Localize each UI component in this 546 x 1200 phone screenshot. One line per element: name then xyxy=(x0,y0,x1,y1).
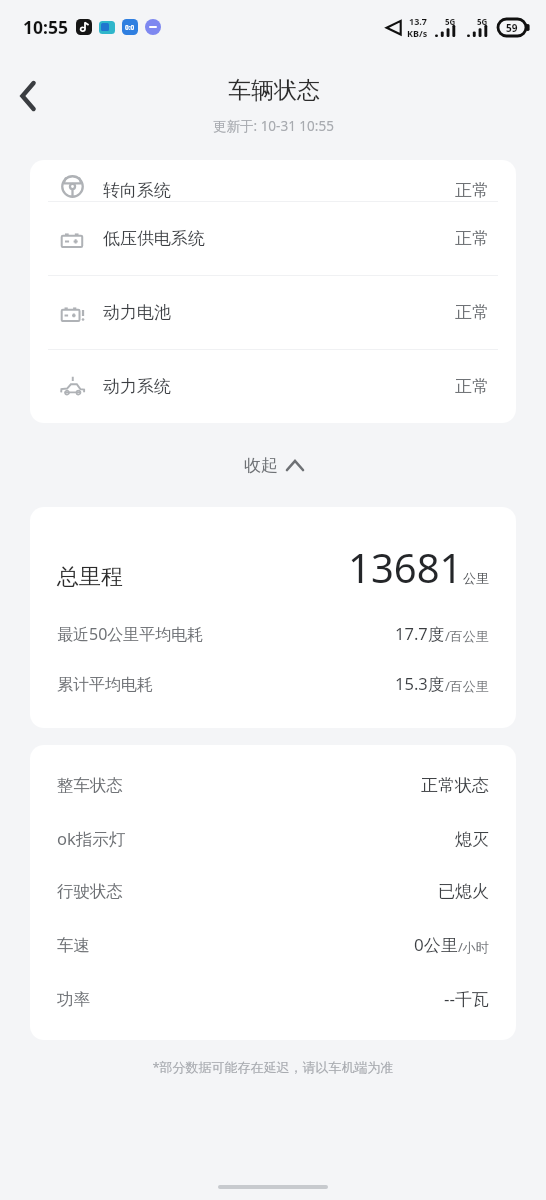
staticText: 行驶状态 xyxy=(57,881,123,902)
button[interactable]: 最近50公里平均电耗 xyxy=(57,622,489,645)
staticText: 13.7 xyxy=(409,15,427,27)
button[interactable]: 动力系统 xyxy=(30,350,516,423)
button[interactable]: 累计平均电耗 xyxy=(57,672,489,695)
button[interactable]: 收起 xyxy=(0,423,546,507)
staticText: 更新于: 10-31 10:55 xyxy=(213,117,334,135)
staticText: 0:0 xyxy=(125,23,135,32)
button[interactable]: 低压供电系统 xyxy=(30,202,516,275)
staticText: 累计平均电耗 xyxy=(57,675,153,695)
button[interactable]: 整车状态 xyxy=(57,775,489,796)
button[interactable]: ok指示灯 xyxy=(57,827,489,850)
staticText: 正常 xyxy=(455,180,489,201)
button[interactable]: 动力电池 xyxy=(30,276,516,349)
staticText: 公里 xyxy=(463,570,489,586)
staticText: 整车状态 xyxy=(57,775,123,796)
staticText: 59 xyxy=(506,21,518,35)
staticText: /小时 xyxy=(458,938,489,956)
staticText: 功率 xyxy=(57,989,90,1010)
button[interactable]: 车速 xyxy=(57,933,489,956)
staticText: ok指示灯 xyxy=(57,827,126,850)
staticText: 15.3度 xyxy=(395,672,445,695)
button[interactable]: 功率 xyxy=(57,987,489,1010)
staticText: 动力电池 xyxy=(103,302,171,323)
staticText: 0公里 xyxy=(414,933,458,956)
staticText: 5G xyxy=(445,16,456,27)
staticText: 最近50公里平均电耗 xyxy=(57,623,204,645)
staticText: 5G xyxy=(477,16,488,27)
staticText: 车辆状态 xyxy=(228,76,320,105)
staticText: --千瓦 xyxy=(444,987,489,1010)
staticText: 10:55 xyxy=(23,15,68,39)
staticText: 动力系统 xyxy=(103,376,171,397)
button[interactable]: Back xyxy=(0,68,56,124)
staticText: 转向系统 xyxy=(103,180,171,201)
staticText: 熄灭 xyxy=(455,829,489,850)
staticText: 低压供电系统 xyxy=(103,228,205,249)
staticText: *部分数据可能存在延迟，请以车机端为准 xyxy=(0,1058,546,1076)
staticText: KB/s xyxy=(407,27,428,39)
staticText: /百公里 xyxy=(445,677,489,695)
staticText: 正常 xyxy=(455,302,489,323)
staticText: 13681 xyxy=(348,540,463,594)
staticText: 总里程 xyxy=(57,563,123,591)
staticText: 正常状态 xyxy=(421,775,489,796)
staticText: 收起 xyxy=(244,455,278,476)
button[interactable]: 转向系统 xyxy=(30,160,516,201)
staticText: 正常 xyxy=(455,376,489,397)
staticText: /百公里 xyxy=(445,627,489,645)
button[interactable]: 行驶状态 xyxy=(57,881,489,902)
staticText: 车速 xyxy=(57,935,90,956)
staticText: 17.7度 xyxy=(395,622,445,645)
staticText: 正常 xyxy=(455,228,489,249)
staticText: 已熄火 xyxy=(438,881,489,902)
